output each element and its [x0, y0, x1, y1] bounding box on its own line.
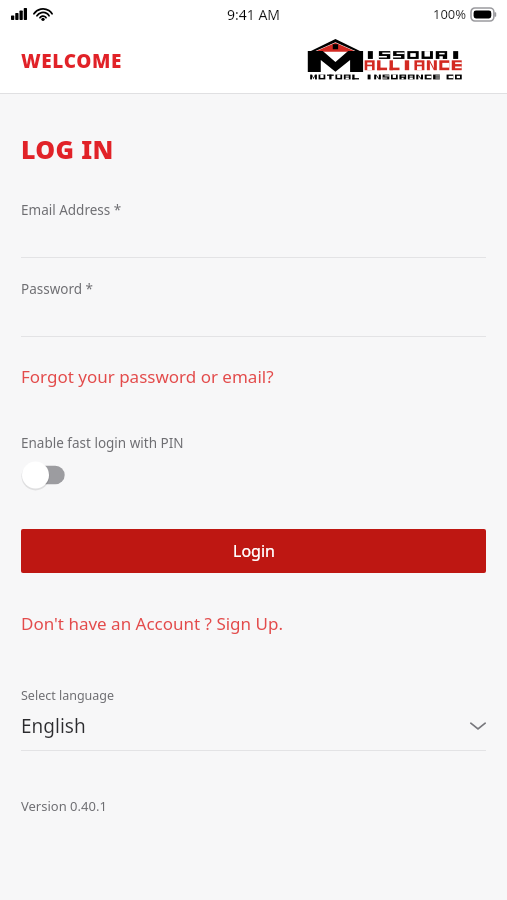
staticText: English — [21, 713, 470, 739]
staticText: Password * — [21, 280, 94, 298]
button[interactable]: Don't have an Account ? Sign Up. — [21, 608, 486, 639]
staticText: Login — [233, 540, 275, 562]
button[interactable]: Password * — [21, 280, 486, 337]
staticText: LOG IN — [21, 132, 114, 166]
staticText: Version 0.40.1 — [21, 797, 107, 815]
staticText: 100% — [433, 5, 467, 23]
button[interactable]: Login — [21, 529, 486, 573]
button[interactable]: Select language — [21, 687, 486, 751]
button[interactable]: Email Address * — [21, 201, 486, 258]
button[interactable]: Enable fast login with PIN — [21, 460, 73, 490]
staticText: Forgot your password or email? — [21, 365, 274, 388]
button[interactable]: Forgot your password or email? — [21, 361, 486, 392]
staticText: 9:41 AM — [227, 5, 281, 24]
staticText: Don't have an Account ? Sign Up. — [21, 612, 283, 635]
staticText: Email Address * — [21, 201, 122, 219]
staticText: Select language — [21, 687, 115, 704]
staticText: Enable fast login with PIN — [21, 434, 184, 452]
staticText: WELCOME — [21, 48, 122, 74]
